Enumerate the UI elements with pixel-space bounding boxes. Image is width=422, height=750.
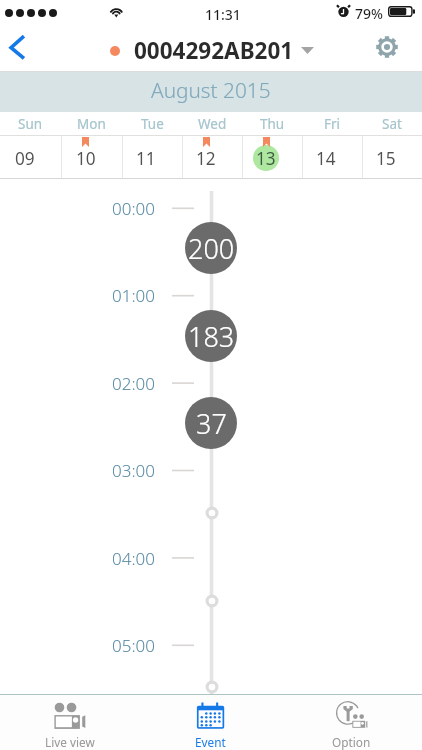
staticText: 13 [256,147,276,170]
button[interactable]: 37 [185,397,237,449]
staticText: 00:00 [112,197,155,220]
staticText: August 2015 [151,76,271,104]
staticText: Sun [18,115,43,133]
staticText: 05:00 [112,634,155,657]
button[interactable]: Settings [368,28,422,72]
staticText: 14 [316,147,336,170]
button[interactable]: 14 [302,136,362,178]
button[interactable]: 15 [362,136,422,178]
staticText: 0004292AB201 [134,35,294,66]
staticText: Thu [260,115,285,133]
button[interactable]: 12 [182,136,242,178]
button[interactable]: Option [281,695,422,750]
staticText: 11 [136,147,156,170]
staticText: 10 [76,147,96,170]
button[interactable]: Event [140,695,281,750]
staticText: Fri [324,115,341,133]
staticText: Option [332,734,371,750]
button[interactable]: 11 [122,136,182,178]
staticText: 04:00 [112,547,155,570]
button[interactable]: Back [0,28,52,72]
staticText: 37 [196,405,227,442]
staticText: 15 [376,147,396,170]
button[interactable]: 200 [185,222,237,274]
staticText: 01:00 [112,284,155,307]
staticText: Live view [45,734,95,750]
staticText: 12 [196,147,216,170]
staticText: 200 [188,230,235,267]
button[interactable]: 13 [242,136,302,178]
button[interactable]: Live view [0,695,140,750]
staticText: 79% [355,4,383,23]
staticText: 03:00 [112,459,155,482]
staticText: 09 [15,147,35,170]
staticText: 183 [188,318,235,355]
staticText: Sat [382,115,402,133]
staticText: Wed [198,115,227,133]
staticText: Tue [141,115,164,133]
staticText: Mon [77,115,106,133]
button[interactable]: 09 [0,136,61,178]
staticText: 11:31 [205,5,241,24]
button[interactable]: 183 [185,310,237,362]
button[interactable]: 0004292AB201 [110,35,314,66]
button[interactable]: 10 [61,136,122,178]
staticText: 02:00 [112,372,155,395]
staticText: Event [195,734,226,750]
